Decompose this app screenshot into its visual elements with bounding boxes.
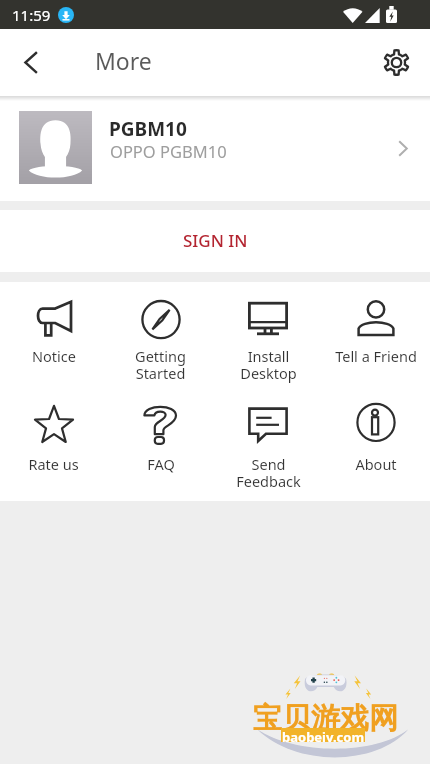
staticText: 宝贝游戏网 [253, 700, 398, 737]
staticText: About [355, 454, 397, 474]
button[interactable]: Getting Started [107, 300, 214, 383]
button[interactable]: Settings [374, 41, 418, 85]
staticText: FAQ [147, 454, 175, 474]
staticText: SIGN IN [183, 229, 248, 252]
staticText: Tell a Friend [335, 346, 417, 366]
button[interactable]: SIGN IN [0, 210, 430, 272]
staticText: More [95, 45, 152, 76]
button[interactable]: Tell a Friend [322, 300, 430, 366]
staticText: Rate us [28, 454, 79, 474]
staticText: Notice [32, 346, 76, 366]
button[interactable]: Back [6, 39, 54, 87]
button[interactable]: PGBM10 [0, 96, 430, 201]
staticText: baobeiy.com [282, 728, 365, 742]
button[interactable]: Install Desktop [214, 300, 322, 383]
button[interactable]: Rate us [0, 404, 107, 474]
button[interactable]: Send Feedback [214, 404, 322, 491]
staticText: Getting Started [135, 346, 186, 383]
staticText: Send Feedback [236, 454, 301, 491]
staticText: OPPO PGBM10 [110, 140, 227, 162]
staticText: 11:59 [12, 5, 51, 25]
button[interactable]: FAQ [107, 404, 214, 474]
staticText: PGBM10 [109, 116, 187, 142]
staticText: Install Desktop [240, 346, 297, 383]
button[interactable]: About [322, 404, 430, 474]
button[interactable]: Notice [0, 300, 107, 366]
